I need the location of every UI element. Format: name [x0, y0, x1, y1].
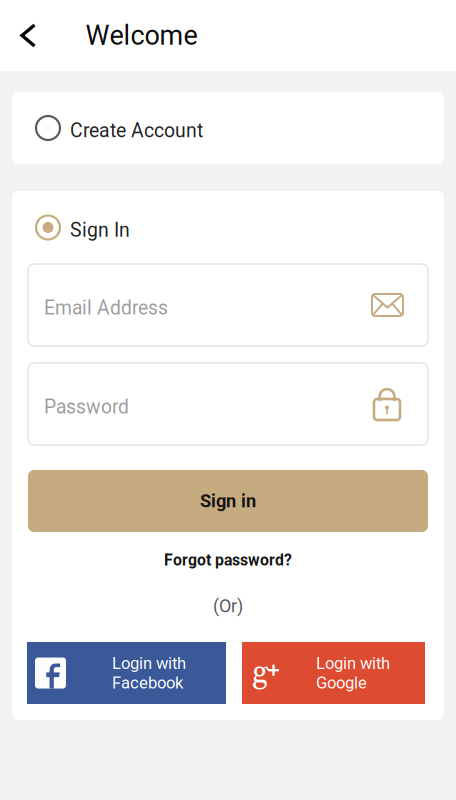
- staticText: Create Account: [70, 119, 203, 142]
- button[interactable]: Login with Facebook: [27, 642, 226, 704]
- staticText: Login with Facebook: [112, 653, 186, 692]
- staticText: Login with Google: [316, 653, 390, 692]
- button[interactable]: g: [242, 642, 425, 704]
- staticText: Sign In: [70, 219, 130, 241]
- button[interactable]: Back: [0, 0, 50, 71]
- staticText: g: [252, 653, 268, 693]
- button[interactable]: Sign In: [12, 191, 444, 264]
- staticText: Forgot password?: [164, 551, 292, 569]
- staticText: (Or): [213, 595, 243, 617]
- staticText: Sign in: [200, 490, 256, 512]
- button[interactable]: Create Account: [0, 71, 456, 164]
- button[interactable]: Forgot password?: [12, 532, 444, 574]
- staticText: Email Address: [44, 297, 168, 319]
- button[interactable]: Sign in: [12, 445, 444, 532]
- staticText: Password: [44, 396, 129, 418]
- staticText: Welcome: [85, 20, 197, 51]
